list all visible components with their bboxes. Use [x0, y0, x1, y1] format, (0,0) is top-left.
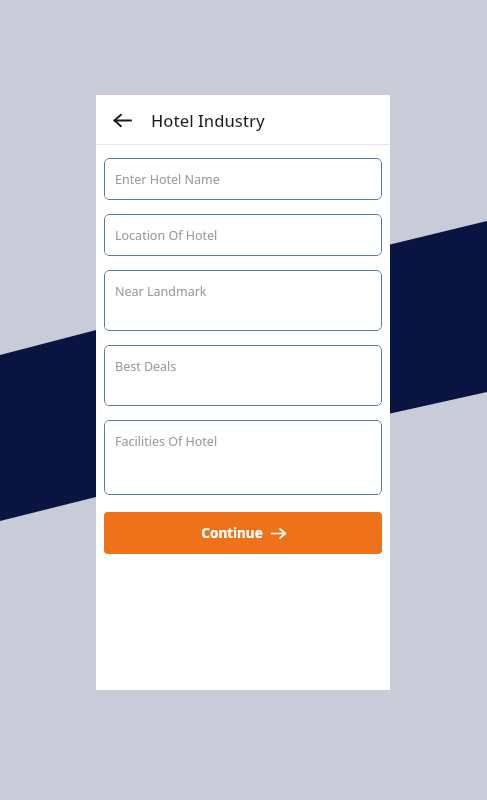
button[interactable]: Location Of Hotel: [104, 214, 382, 256]
button[interactable]: Back: [104, 102, 140, 138]
staticText: Near Landmark: [115, 283, 207, 300]
button[interactable]: Near Landmark: [104, 270, 382, 331]
staticText: Best Deals: [115, 358, 177, 375]
button[interactable]: Facilities Of Hotel: [104, 420, 382, 495]
staticText: Enter Hotel Name: [115, 171, 220, 188]
button[interactable]: Best Deals: [104, 345, 382, 406]
staticText: Facilities Of Hotel: [115, 433, 218, 450]
staticText: Location Of Hotel: [115, 227, 218, 244]
staticText: Continue: [201, 524, 263, 542]
button[interactable]: Continue: [104, 512, 382, 554]
staticText: Hotel Industry: [151, 109, 265, 131]
button[interactable]: Enter Hotel Name: [104, 158, 382, 200]
